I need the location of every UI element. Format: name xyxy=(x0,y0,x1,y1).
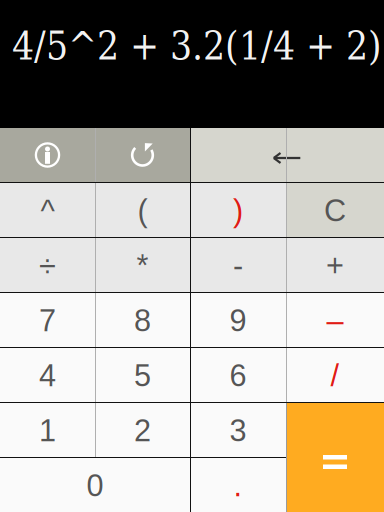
staticText: ) xyxy=(233,193,243,228)
button[interactable]: + xyxy=(286,237,384,292)
button[interactable]: C xyxy=(286,182,384,237)
button[interactable]: - xyxy=(190,237,286,292)
staticText: 0 xyxy=(86,468,103,503)
staticText: - xyxy=(233,248,243,283)
button[interactable]: . xyxy=(190,457,286,512)
staticText: – xyxy=(326,303,343,338)
button[interactable]: 4 xyxy=(0,347,95,402)
staticText: . xyxy=(233,468,242,503)
staticText: 3 xyxy=(229,413,246,448)
staticText: + xyxy=(326,248,344,283)
button[interactable]: Info xyxy=(0,128,95,182)
staticText: 8 xyxy=(134,303,151,338)
staticText: ^ xyxy=(40,193,54,228)
staticText: ( xyxy=(137,193,147,228)
button[interactable]: 7 xyxy=(0,292,95,347)
button[interactable]: 8 xyxy=(95,292,190,347)
button[interactable]: Equals xyxy=(286,402,384,512)
button[interactable]: – xyxy=(286,292,384,347)
staticText: * xyxy=(136,248,148,283)
staticText: / xyxy=(330,358,339,393)
staticText: 6 xyxy=(229,358,246,393)
button[interactable]: 6 xyxy=(190,347,286,402)
button[interactable]: ) xyxy=(190,182,286,237)
staticText: 5 xyxy=(134,358,151,393)
staticText: 4 xyxy=(39,358,56,393)
button[interactable]: 5 xyxy=(95,347,190,402)
staticText: 9 xyxy=(229,303,246,338)
button[interactable]: 1 xyxy=(0,402,95,457)
staticText: 2 xyxy=(134,413,151,448)
button[interactable]: Undo xyxy=(95,128,190,182)
button[interactable]: * xyxy=(95,237,190,292)
staticText: 7 xyxy=(39,303,56,338)
staticText: ÷ xyxy=(39,248,56,283)
staticText: 1 xyxy=(39,413,56,448)
button[interactable]: 0 xyxy=(0,457,190,512)
button[interactable]: Backspace xyxy=(190,128,384,182)
button[interactable]: 2 xyxy=(95,402,190,457)
button[interactable]: / xyxy=(286,347,384,402)
button[interactable]: 3 xyxy=(190,402,286,457)
button[interactable]: 9 xyxy=(190,292,286,347)
button[interactable]: ( xyxy=(95,182,190,237)
staticText: 4/5^2 + 3.2(1/4 + 2) xyxy=(12,23,382,68)
button[interactable]: ÷ xyxy=(0,237,95,292)
staticText: C xyxy=(324,193,346,228)
button[interactable]: ^ xyxy=(0,182,95,237)
